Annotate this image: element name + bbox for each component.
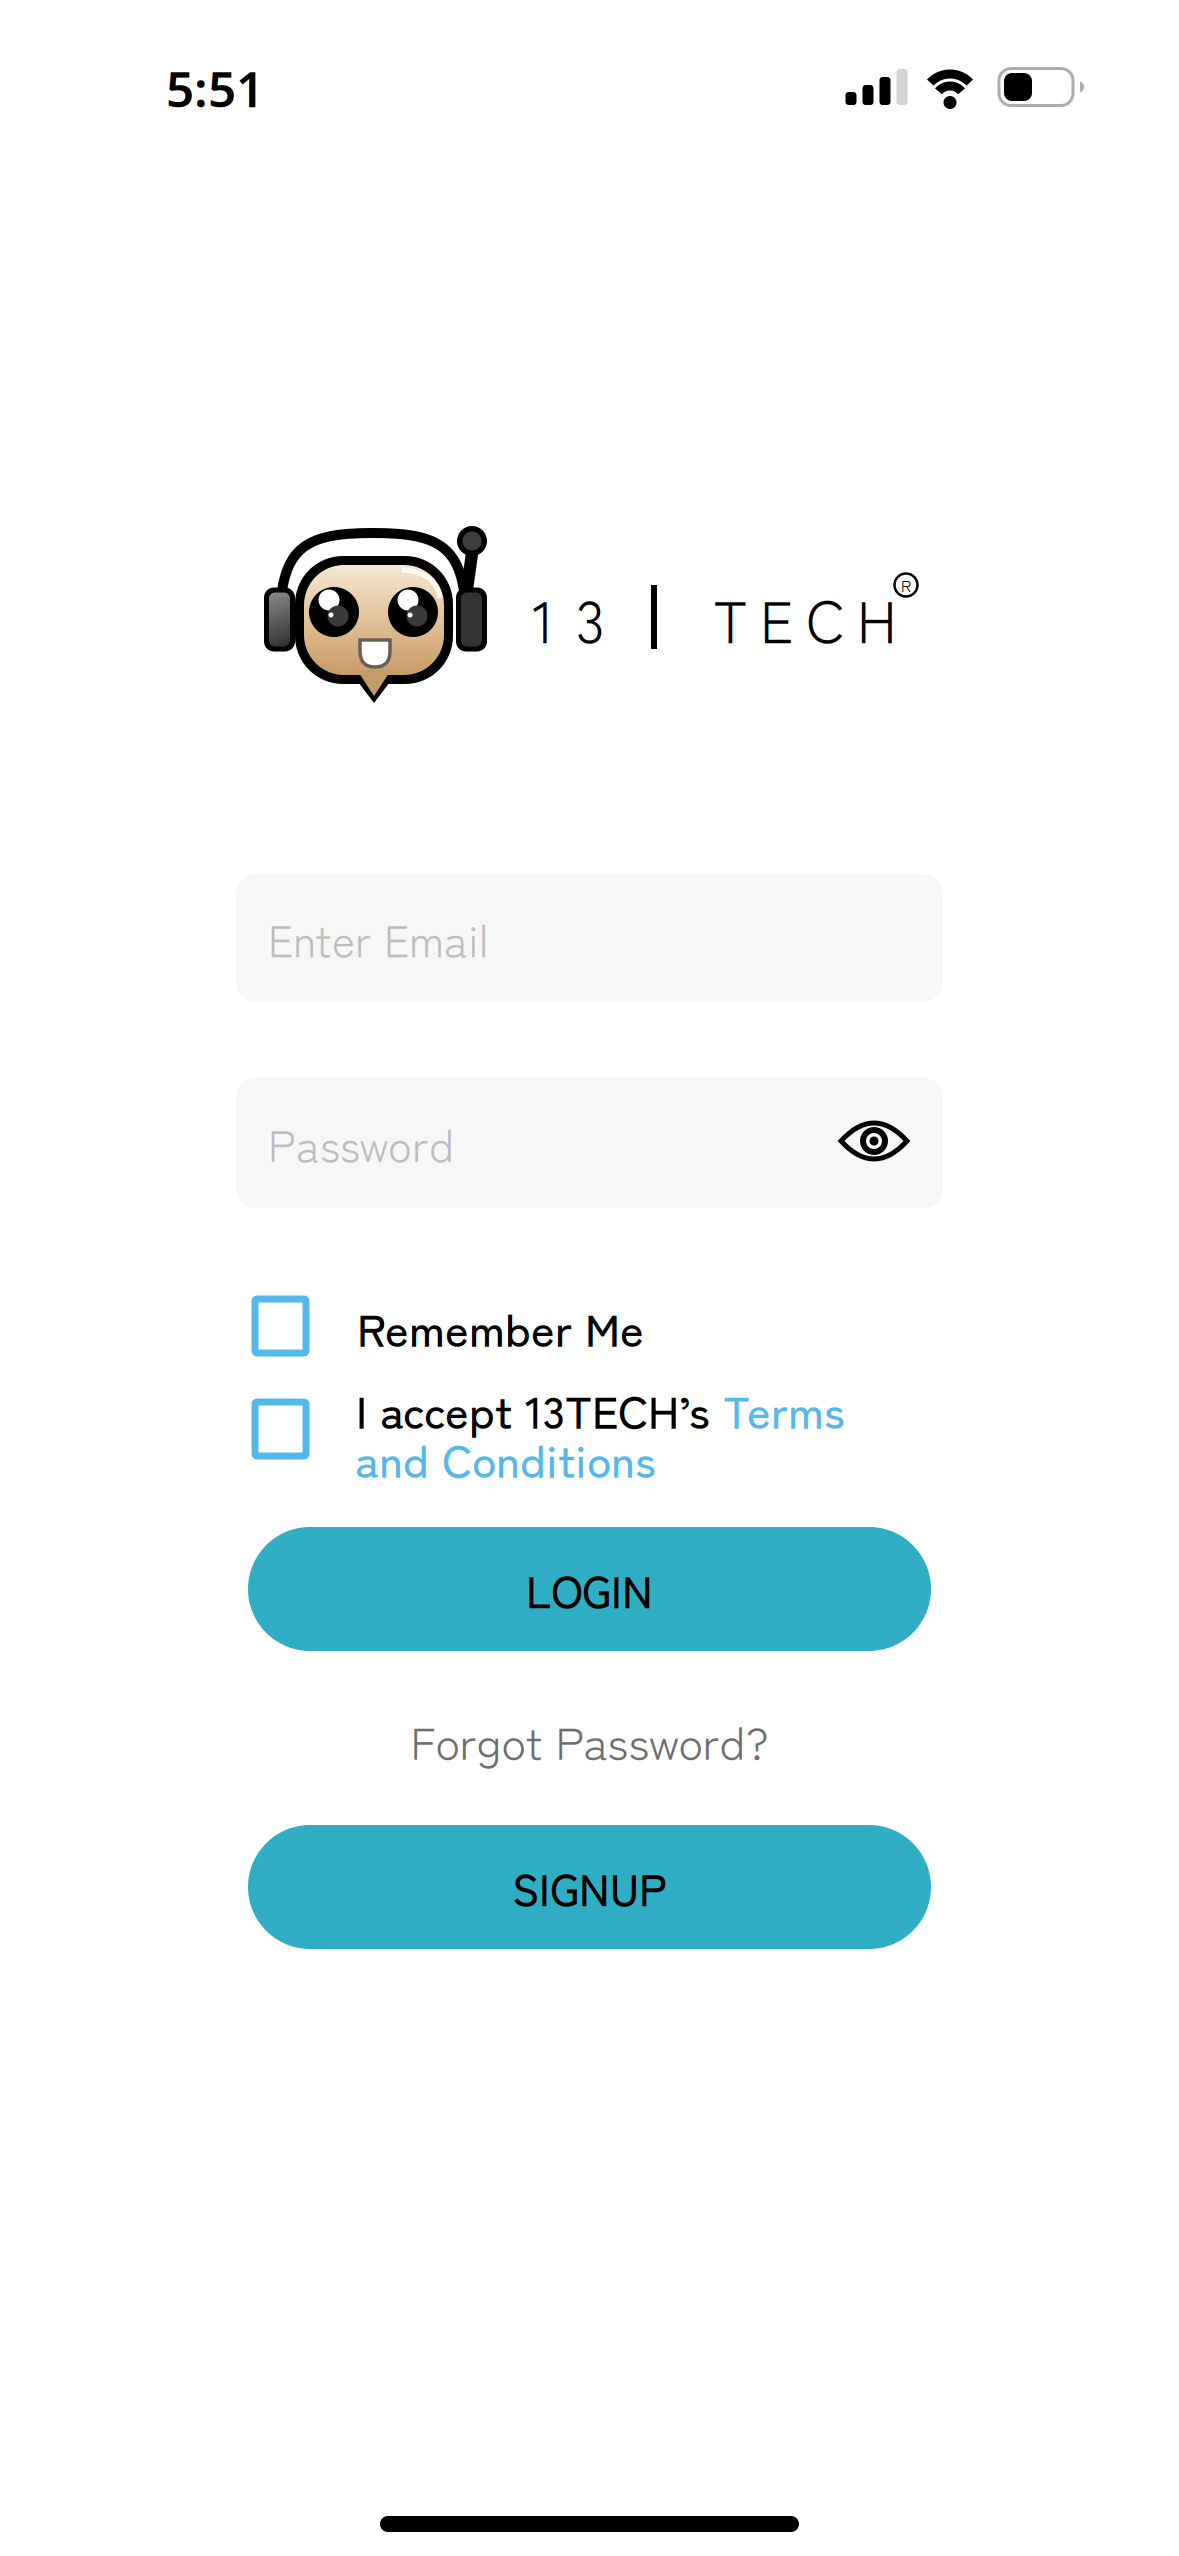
button[interactable]: SIGNUP [248, 1825, 931, 1949]
staticText: TECH [713, 576, 897, 660]
staticText: 3 [576, 576, 604, 660]
staticText: LOGIN [526, 1557, 653, 1621]
staticText: 1 [532, 576, 554, 660]
staticText: Remember Me [357, 1294, 644, 1360]
staticText: R [901, 573, 911, 597]
staticText: Forgot Password? [410, 1707, 768, 1773]
button[interactable]: and Conditions [355, 1425, 656, 1491]
button[interactable]: Enter Email [236, 874, 943, 1002]
button[interactable]: Accept terms checkbox [252, 1399, 309, 1459]
button[interactable]: Show password [838, 1118, 910, 1164]
staticText: Enter Email [268, 906, 488, 970]
staticText: and Conditions [355, 1425, 656, 1491]
button[interactable]: Terms [723, 1376, 845, 1442]
staticText: I accept 13TECH’s [356, 1376, 723, 1442]
button[interactable]: Remember Me checkbox [252, 1296, 309, 1356]
staticText: Terms [723, 1376, 845, 1442]
button[interactable]: LOGIN [248, 1527, 931, 1651]
staticText: 5:51 [166, 55, 264, 121]
staticText: SIGNUP [512, 1855, 667, 1919]
button[interactable]: Password [236, 1077, 943, 1208]
button[interactable]: Forgot Password? [410, 1707, 768, 1773]
staticText: Password [268, 1111, 454, 1175]
